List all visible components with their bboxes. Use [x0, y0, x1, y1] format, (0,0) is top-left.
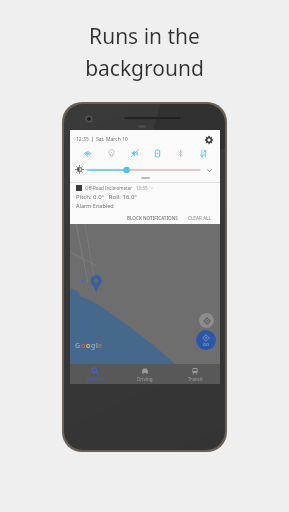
button[interactable]: Sound off — [123, 145, 146, 162]
staticText: 12:35 — [136, 185, 148, 191]
staticText: Driving — [137, 376, 153, 382]
staticText: 12:35 — [76, 136, 89, 143]
button[interactable]: Start navigation — [196, 330, 216, 350]
button[interactable]: Expand — [204, 165, 214, 175]
button[interactable]: Auto rotate — [146, 145, 169, 162]
button[interactable]: My location — [199, 313, 214, 328]
button[interactable]: Wi-Fi — [75, 145, 99, 162]
staticText: l — [96, 341, 98, 351]
staticText: g — [91, 341, 96, 351]
staticText: Sat, March 10 — [96, 136, 128, 143]
staticText: Alarm Enabled — [76, 202, 114, 209]
staticText: background — [85, 54, 204, 83]
staticText: CLEAR ALL — [188, 215, 211, 221]
button[interactable]: Explore — [70, 364, 120, 384]
staticText: e — [98, 341, 103, 351]
button[interactable]: Bluetooth — [169, 145, 192, 162]
button[interactable]: Brightness — [87, 165, 200, 175]
button[interactable]: Data — [192, 145, 215, 162]
button[interactable]: Driving — [120, 364, 170, 384]
staticText: Pitch: 0.0° Roll: 16.0° — [76, 193, 137, 201]
button[interactable]: Location — [99, 145, 123, 162]
staticText: Runs in the — [89, 22, 200, 51]
button[interactable]: Off-Road Inclinometer — [70, 183, 220, 211]
staticText: o — [81, 341, 86, 351]
staticText: o — [86, 341, 91, 351]
button[interactable]: Transit — [170, 364, 220, 384]
staticText: G — [75, 341, 81, 351]
button[interactable]: Settings — [203, 134, 214, 145]
button[interactable]: BLOCK NOTIFICATIONS — [124, 213, 181, 223]
staticText: GO — [203, 342, 210, 347]
staticText: Explore — [87, 376, 104, 382]
staticText: Transit — [188, 376, 203, 382]
staticText: Off-Road Inclinometer — [85, 185, 133, 191]
staticText: BLOCK NOTIFICATIONS — [127, 215, 178, 221]
button[interactable]: CLEAR ALL — [185, 213, 214, 223]
